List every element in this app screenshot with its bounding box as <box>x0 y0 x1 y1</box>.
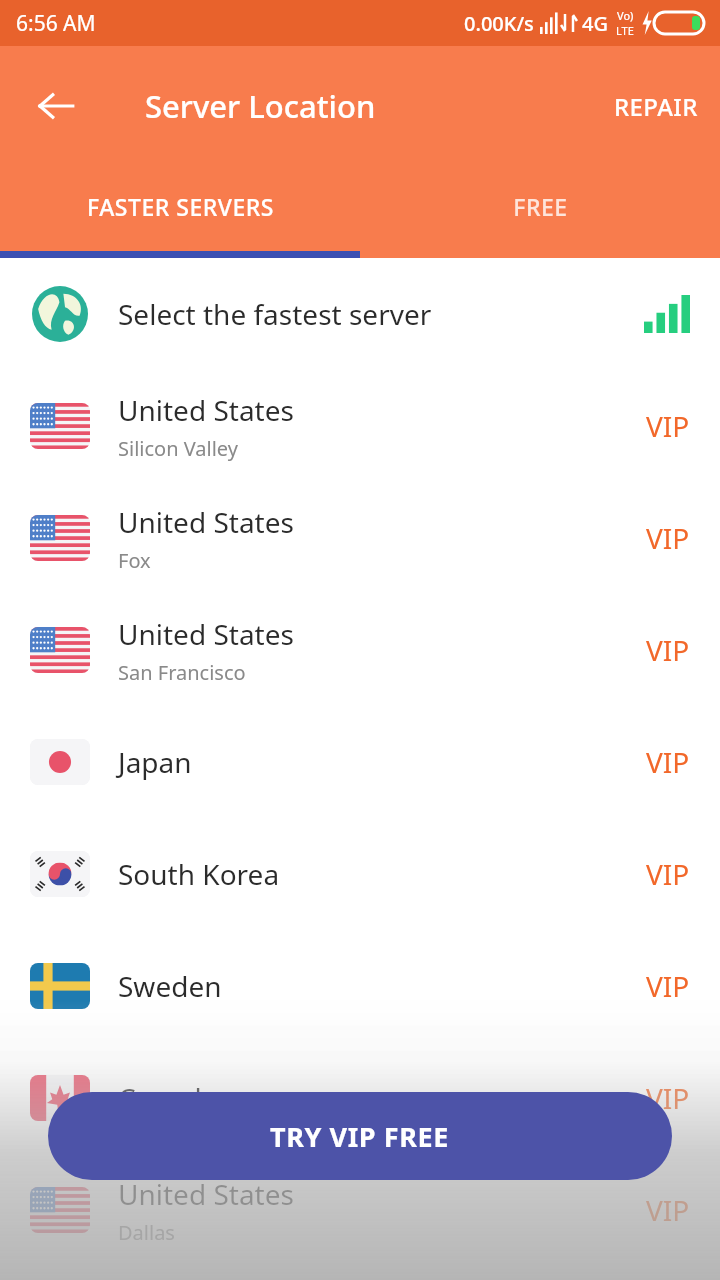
staticText: VIP <box>646 743 690 781</box>
staticText: FREE <box>513 191 568 222</box>
button[interactable]: South Korea <box>0 818 720 930</box>
staticText: United States <box>118 503 294 541</box>
staticText: VIP <box>646 1079 690 1117</box>
button[interactable]: Select the fastest server <box>0 258 720 370</box>
staticText: VIP <box>646 855 690 893</box>
staticText: Dallas <box>118 1219 175 1246</box>
button[interactable]: United States <box>0 370 720 482</box>
staticText: 0.00K/s <box>464 10 534 37</box>
staticText: Silicon Valley <box>118 435 238 462</box>
staticText: Vo) <box>617 8 634 23</box>
staticText: South Korea <box>118 855 280 893</box>
button[interactable]: TRY VIP FREE <box>48 1092 672 1180</box>
staticText: VIP <box>646 631 690 669</box>
staticText: United States <box>118 615 294 653</box>
staticText: San Francisco <box>118 659 246 686</box>
button[interactable]: Back <box>20 70 92 142</box>
button[interactable]: United States <box>0 482 720 594</box>
staticText: Canada <box>118 1079 218 1117</box>
staticText: VIP <box>646 407 690 445</box>
staticText: REPAIR <box>614 90 698 123</box>
staticText: Sweden <box>118 967 222 1005</box>
staticText: Japan <box>118 743 192 781</box>
button[interactable]: FASTER SERVERS <box>0 166 360 258</box>
staticText: United States <box>118 391 294 429</box>
button[interactable]: United States <box>0 1154 720 1266</box>
button[interactable]: Japan <box>0 706 720 818</box>
staticText: 6:56 AM <box>16 9 96 38</box>
staticText: United States <box>118 1175 294 1213</box>
staticText: Server Location <box>145 85 376 127</box>
button[interactable]: Sweden <box>0 930 720 1042</box>
staticText: VIP <box>646 967 690 1005</box>
button[interactable]: Canada <box>0 1042 720 1154</box>
button[interactable]: FREE <box>360 166 720 258</box>
staticText: VIP <box>646 1191 690 1229</box>
staticText: TRY VIP FREE <box>270 1118 450 1155</box>
staticText: LTE <box>616 23 634 38</box>
staticText: FASTER SERVERS <box>87 191 274 222</box>
staticText: 4G <box>582 10 608 37</box>
staticText: Fox <box>118 547 151 574</box>
staticText: Select the fastest server <box>118 295 432 333</box>
button[interactable]: REPAIR <box>602 76 710 137</box>
staticText: VIP <box>646 519 690 557</box>
button[interactable]: United States <box>0 594 720 706</box>
